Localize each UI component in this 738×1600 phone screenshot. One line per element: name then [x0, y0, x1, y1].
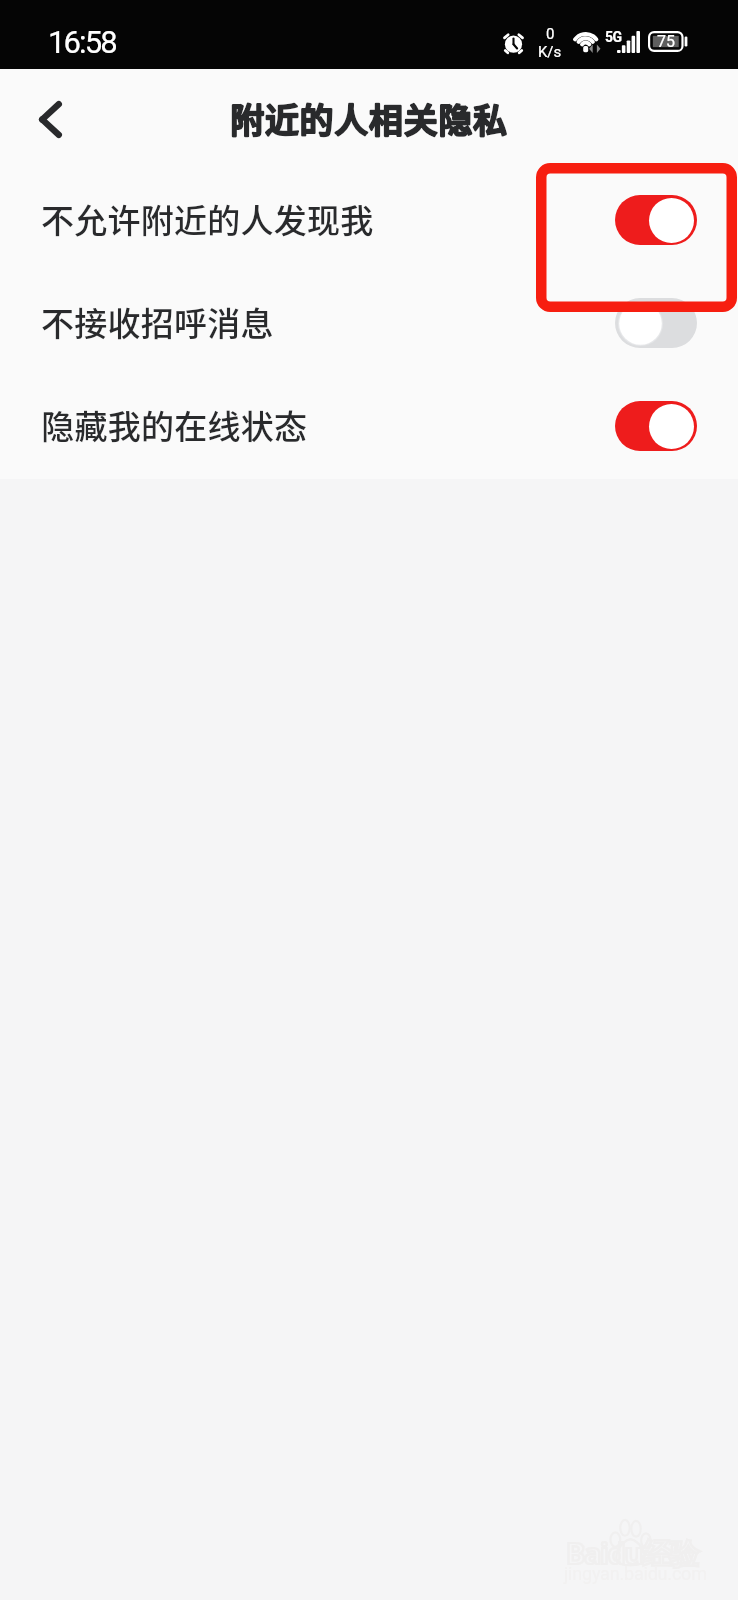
staticText: 附近的人相关隐私: [230, 94, 508, 143]
button[interactable]: Switch off: [615, 298, 697, 348]
staticText: 0: [546, 25, 555, 43]
staticText: 5G: [605, 29, 622, 45]
staticText: Baidu经验: [566, 1533, 698, 1573]
staticText: K/s: [538, 43, 562, 61]
button[interactable]: 隐藏我的在线状态: [0, 374, 738, 477]
button[interactable]: Switch on: [615, 195, 697, 245]
button[interactable]: Back: [22, 91, 78, 147]
staticText: 不允许附近的人发现我: [41, 195, 374, 243]
button[interactable]: Switch on: [615, 401, 697, 451]
staticText: 附近的人相关隐私: [230, 94, 508, 143]
staticText: 75: [657, 32, 675, 51]
button[interactable]: 不允许附近的人发现我: [0, 168, 738, 271]
staticText: 16:58: [48, 24, 116, 60]
staticText: 隐藏我的在线状态: [41, 401, 307, 449]
staticText: 不接收招呼消息: [41, 298, 274, 346]
button[interactable]: 不接收招呼消息: [0, 271, 738, 374]
